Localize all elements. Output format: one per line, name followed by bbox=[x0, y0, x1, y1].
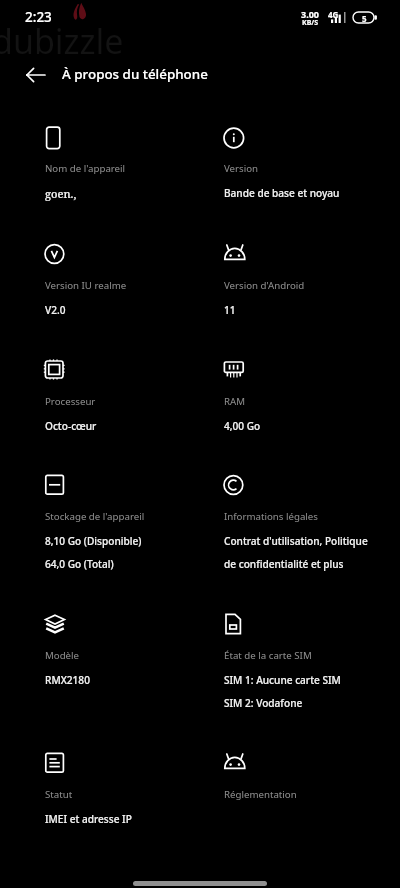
button[interactable]: Statut bbox=[39, 748, 223, 828]
staticText: 2:23 bbox=[25, 8, 52, 26]
staticText: 11 bbox=[224, 303, 236, 317]
button[interactable]: Modèle bbox=[39, 609, 223, 689]
staticText: Nom de l'appareil bbox=[45, 162, 126, 175]
staticText: de confidentialité et plus bbox=[224, 557, 344, 571]
staticText: À propos du téléphone bbox=[62, 65, 208, 83]
staticText: Bande de base et noyau bbox=[224, 186, 340, 200]
staticText: Informations légales bbox=[224, 510, 318, 523]
staticText: V2.0 bbox=[45, 303, 66, 317]
staticText: 5 bbox=[362, 13, 367, 24]
staticText: Octo-cœur bbox=[45, 419, 97, 433]
staticText: SIM 2: Vodafone bbox=[224, 696, 303, 710]
button[interactable]: Back bbox=[17, 56, 54, 93]
button[interactable]: Nom de l'appareil bbox=[39, 122, 223, 202]
staticText: dubizzle bbox=[0, 18, 124, 64]
staticText: Stockage de l'appareil bbox=[45, 510, 145, 523]
staticText: KB/S bbox=[302, 18, 319, 28]
button[interactable]: Stockage de l'appareil bbox=[39, 470, 223, 573]
button[interactable]: Version IU realme bbox=[39, 239, 223, 319]
button[interactable]: Processeur bbox=[39, 355, 223, 435]
staticText: 8,10 Go (Disponible) bbox=[45, 534, 142, 548]
staticText: État de la carte SIM bbox=[224, 649, 312, 662]
staticText: Processeur bbox=[45, 395, 96, 408]
button[interactable]: Version d'Android bbox=[218, 239, 400, 319]
staticText: 64,0 Go (Total) bbox=[45, 557, 114, 571]
staticText: Version bbox=[224, 162, 259, 175]
button[interactable]: Informations légales bbox=[218, 470, 400, 573]
staticText: Statut bbox=[45, 788, 73, 801]
button[interactable]: Réglementation bbox=[218, 748, 400, 805]
staticText: SIM 1: Aucune carte SIM bbox=[224, 673, 341, 687]
staticText: RMX2180 bbox=[45, 673, 90, 687]
staticText: RAM bbox=[224, 395, 246, 408]
staticText: Version IU realme bbox=[45, 279, 127, 292]
staticText: Version d'Android bbox=[224, 279, 305, 292]
staticText: Modèle bbox=[45, 649, 80, 662]
staticText: IMEI et adresse IP bbox=[45, 812, 132, 826]
staticText: 4,00 Go bbox=[224, 419, 261, 433]
button[interactable]: État de la carte SIM bbox=[218, 609, 400, 712]
staticText: 3.00 bbox=[301, 8, 319, 20]
staticText: Réglementation bbox=[224, 788, 297, 801]
staticText: Contrat d'utilisation, Politique bbox=[224, 534, 368, 548]
button[interactable]: Version bbox=[218, 122, 400, 202]
staticText: 4G bbox=[328, 9, 339, 20]
button[interactable]: RAM bbox=[218, 355, 400, 435]
staticText: goen., bbox=[45, 186, 77, 201]
